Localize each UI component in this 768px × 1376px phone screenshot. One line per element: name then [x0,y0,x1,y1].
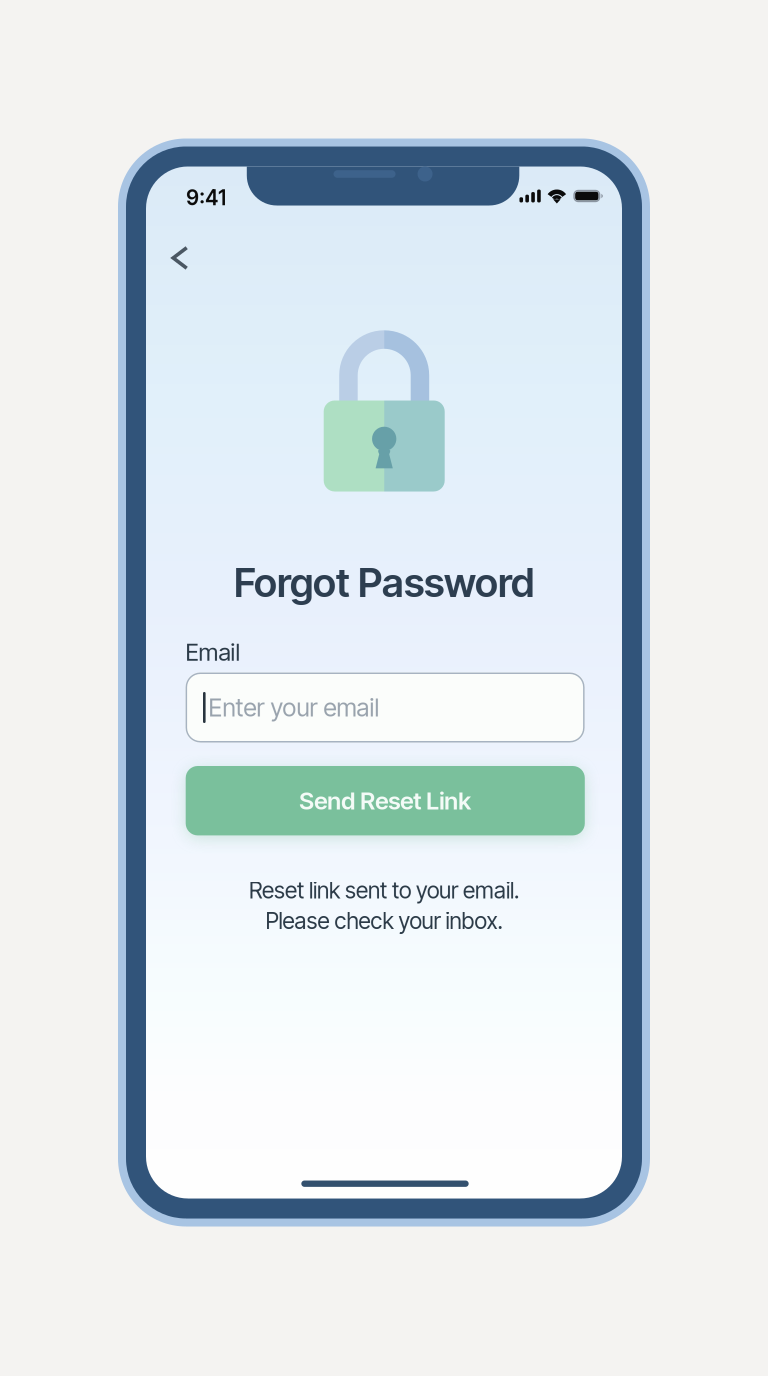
staticText: Enter your email [209,693,380,722]
staticText: Reset link sent to your email. [249,877,519,904]
staticText: Please check your inbox. [265,907,502,934]
button[interactable]: Back [157,232,202,284]
staticText: Forgot Password [234,558,534,607]
button[interactable]: Send Reset Link [186,766,585,835]
staticText: Email [186,637,241,666]
button[interactable]: Enter your email [186,672,585,742]
staticText: 9:41 [186,185,226,210]
staticText: Send Reset Link [299,786,471,815]
